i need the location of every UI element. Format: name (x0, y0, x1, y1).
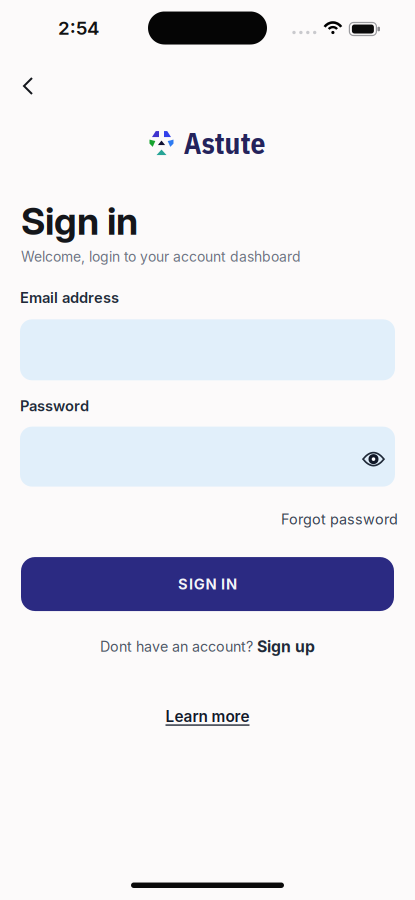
staticText: Astute (183, 124, 265, 162)
button[interactable]: Forgot password (281, 511, 398, 528)
button[interactable]: SIGN IN (21, 557, 394, 611)
staticText: Sign in (21, 199, 138, 243)
staticText: 2:54 (58, 17, 99, 39)
button[interactable]: Sign up (257, 637, 315, 656)
staticText: Learn more (165, 707, 249, 726)
staticText: Dont have an account? (100, 638, 253, 655)
staticText: SIGN IN (178, 575, 237, 593)
button[interactable]: Back (16, 77, 40, 95)
staticText: Forgot password (281, 511, 398, 528)
button[interactable]: Learn more (165, 707, 249, 726)
button[interactable]: Password (20, 427, 395, 487)
button[interactable]: Show password (362, 448, 395, 466)
staticText: Sign up (257, 637, 315, 656)
staticText: Welcome, login to your account dashboard (21, 248, 301, 265)
staticText: Password (20, 397, 89, 415)
staticText: Email address (20, 289, 119, 306)
